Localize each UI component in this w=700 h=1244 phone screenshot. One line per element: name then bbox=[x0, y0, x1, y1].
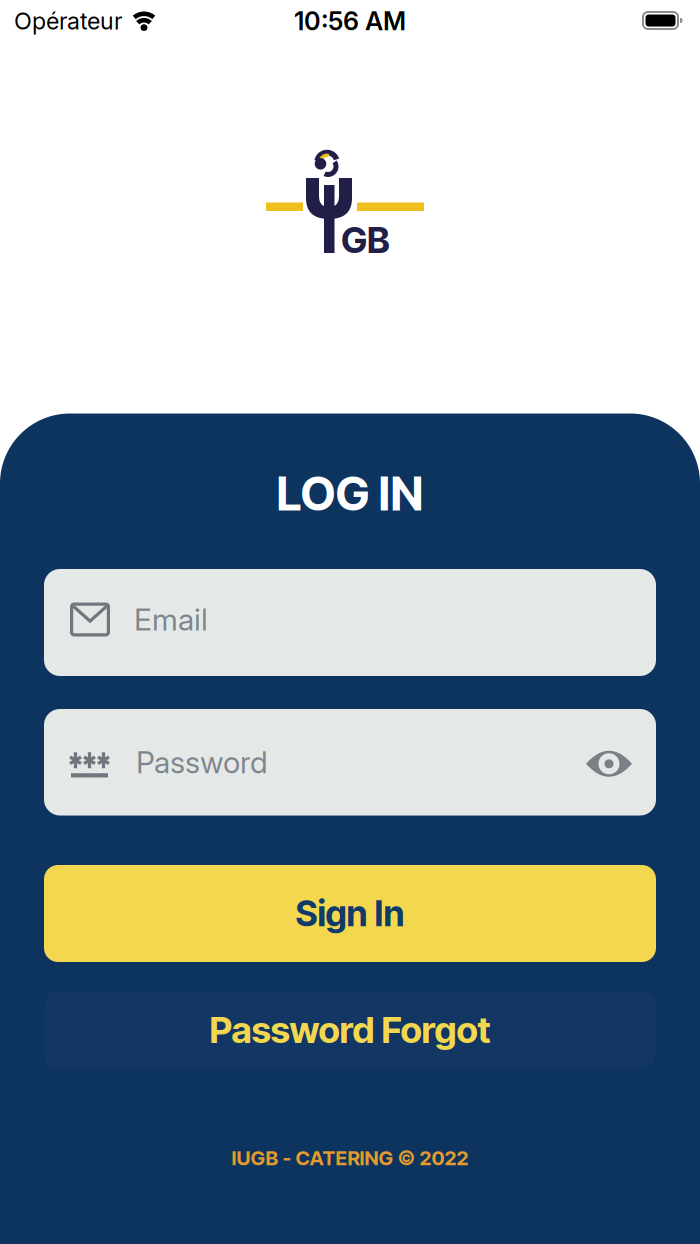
staticText: LOG IN bbox=[276, 465, 423, 522]
button[interactable]: Password bbox=[44, 709, 656, 815]
button[interactable]: Password Forgot bbox=[45, 991, 655, 1068]
staticText: Sign In bbox=[295, 892, 404, 935]
staticText: 10:56 AM bbox=[294, 6, 406, 36]
staticText: Opérateur bbox=[14, 7, 123, 35]
staticText: Password Forgot bbox=[209, 1008, 490, 1052]
button[interactable]: Email bbox=[44, 569, 656, 676]
staticText: GB bbox=[341, 218, 390, 262]
staticText: IUGB - CATERING © 2022 bbox=[231, 1146, 468, 1170]
button[interactable]: Show password bbox=[586, 747, 632, 777]
staticText: Password bbox=[136, 744, 268, 780]
button[interactable]: Sign In bbox=[44, 865, 656, 962]
staticText: Email bbox=[134, 601, 208, 638]
